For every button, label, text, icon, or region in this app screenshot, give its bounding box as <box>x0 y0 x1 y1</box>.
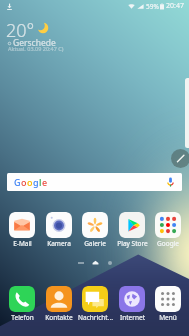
button[interactable]: Nachricht... <box>77 286 113 322</box>
other: Apps page <box>78 260 84 266</box>
staticText: Kontakte <box>45 313 73 322</box>
staticText: Gerschede <box>13 37 56 49</box>
button[interactable]: G <box>7 173 182 191</box>
staticText: o <box>21 176 27 188</box>
button[interactable]: Internet <box>114 286 150 322</box>
staticText: Internet <box>120 313 145 322</box>
staticText: g <box>33 176 39 188</box>
staticText: Play Store <box>117 239 148 248</box>
button[interactable]: Kamera <box>41 212 77 248</box>
staticText: 20:47 <box>166 1 184 11</box>
staticText: E-Mail <box>13 239 32 248</box>
staticText: 20° <box>6 18 35 43</box>
button[interactable]: Telefon <box>4 286 40 322</box>
button[interactable]: Galerie <box>77 212 113 248</box>
staticText: G <box>14 176 21 188</box>
staticText: e <box>42 176 48 188</box>
other: Home page <box>92 259 99 266</box>
staticText: Aktual. 03.09 20:47 C) <box>8 45 64 52</box>
staticText: l <box>39 176 42 188</box>
staticText: Nachricht... <box>78 313 113 322</box>
other: Voice search <box>167 177 174 187</box>
button[interactable]: Edge panel handle <box>171 149 189 168</box>
staticText: Kamera <box>47 239 71 248</box>
staticText: Menü <box>159 313 177 322</box>
staticText: 59% <box>146 2 159 11</box>
button[interactable]: Play Store <box>114 212 150 248</box>
button[interactable]: Menü <box>150 286 186 322</box>
staticText: Telefon <box>11 313 34 322</box>
staticText: Google <box>157 239 179 248</box>
button[interactable]: Kontakte <box>41 286 77 322</box>
button[interactable]: E-Mail <box>4 212 40 248</box>
staticText: Galerie <box>84 239 106 248</box>
button[interactable]: Google <box>150 212 186 248</box>
staticText: o <box>27 176 33 188</box>
